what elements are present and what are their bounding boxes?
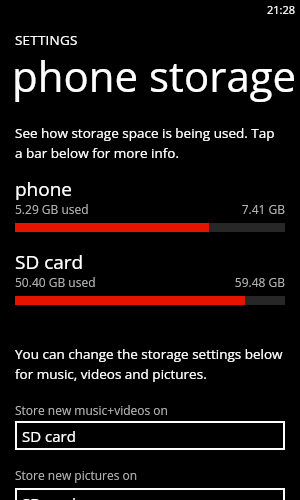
staticText: 7.41 GB — [15, 201, 285, 217]
staticText: Store new pictures on — [15, 467, 138, 483]
staticText: SETTINGS — [15, 31, 78, 49]
staticText: SD card — [15, 249, 84, 275]
button[interactable]: phone — [0, 182, 300, 238]
staticText: 59.48 GB — [15, 274, 285, 290]
staticText: You can change the storage settings belo… — [15, 345, 295, 383]
button[interactable]: Store new music and videos on SD card — [15, 421, 285, 450]
staticText: phone — [15, 176, 73, 202]
staticText: Store new music+videos on — [15, 402, 168, 418]
staticText: See how storage space is being used. Tap… — [15, 124, 295, 162]
staticText: 5.29 GB used — [15, 201, 89, 217]
button[interactable]: SD card — [0, 255, 300, 311]
staticText: phone storage — [12, 47, 297, 104]
staticText: 21:28 — [267, 2, 296, 17]
staticText: SD card — [22, 426, 76, 446]
staticText: SD card — [22, 493, 76, 500]
staticText: 50.40 GB used — [15, 274, 96, 290]
button[interactable]: Store new pictures on SD card — [15, 488, 285, 500]
